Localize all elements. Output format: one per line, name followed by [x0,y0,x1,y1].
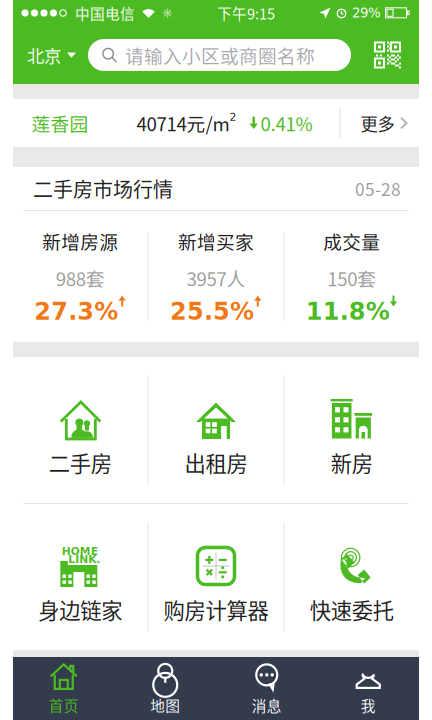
button[interactable]: 我 [317,657,419,720]
staticText: 下午9:15 [217,2,275,24]
button[interactable]: 地图 [114,657,216,720]
staticText: 29% [352,5,381,21]
staticText: 988套 [56,264,105,291]
staticText: HOME [62,545,98,557]
staticText: 二手房市场行情 [33,174,173,203]
staticText: 150套 [327,264,376,291]
staticText: 身边链家 [38,594,122,625]
button[interactable]: 快速委托 [284,504,419,650]
staticText: 0.41% [260,109,312,136]
staticText: 更多 [360,110,394,136]
button[interactable]: 首页 [13,657,114,720]
staticText: 购房计算器 [163,594,268,625]
button[interactable]: 购房计算器 [149,504,283,650]
staticText: 成交量 [323,227,380,254]
button[interactable]: 二手房 [13,357,148,503]
staticText: 新房 [331,447,373,478]
staticText: 北京 [27,42,61,68]
button[interactable]: 消息 [216,657,317,720]
staticText: 我 [361,694,376,716]
button[interactable]: 莲香园 [12,99,339,147]
staticText: 中国电信 [75,2,135,24]
staticText: 请输入小区或商圈名称 [125,41,315,68]
staticText: 地图 [150,694,180,716]
staticText: 25.5% [170,298,254,325]
staticText: 消息 [252,694,282,716]
staticText: 首页 [49,694,79,716]
staticText: 新增买家 [178,227,254,254]
button[interactable]: 出租房 [149,357,283,503]
staticText: 莲香园 [31,109,88,136]
button[interactable]: 扫一扫 [360,26,419,84]
staticText: 快速委托 [310,594,394,625]
button[interactable]: 新房 [284,357,419,503]
button[interactable]: 北京 [13,26,88,84]
staticText: LINK. [68,553,100,565]
staticText: 二手房 [49,447,112,478]
staticText: 2 [229,111,236,123]
staticText: 3957人 [186,264,245,291]
staticText: 05-28 [355,176,401,201]
staticText: 11.8% [306,298,390,325]
staticText: 新增房源 [42,227,118,254]
button[interactable]: HOME [13,504,148,650]
staticText: 40714元/m [136,109,229,136]
staticText: 出租房 [184,447,247,478]
button[interactable]: 请输入小区或商圈名称 [88,39,351,71]
staticText: 27.3% [34,298,118,325]
button[interactable]: 更多 [340,99,419,147]
